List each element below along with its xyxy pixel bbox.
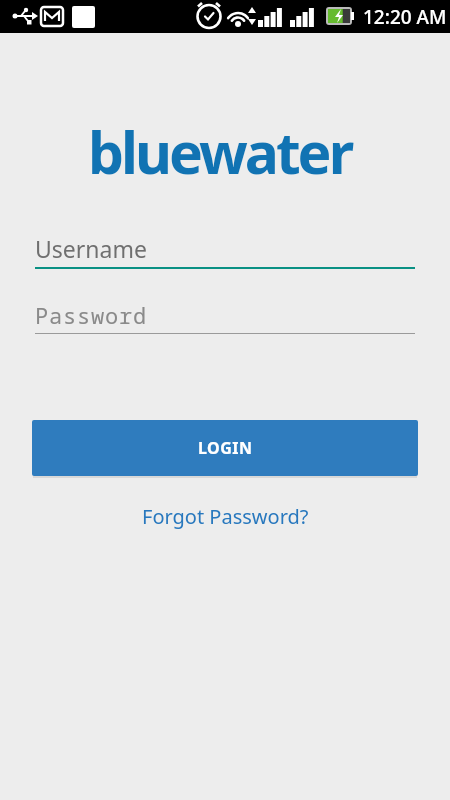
button[interactable]: Forgot Password? bbox=[142, 503, 309, 530]
staticText: Password bbox=[35, 300, 148, 330]
button[interactable]: Password bbox=[35, 300, 415, 334]
staticText: Username bbox=[35, 233, 147, 264]
staticText: 12:20 AM bbox=[363, 4, 447, 30]
button[interactable]: LOGIN bbox=[32, 420, 418, 476]
button[interactable]: Username bbox=[35, 233, 415, 269]
staticText: Forgot Password? bbox=[142, 503, 309, 530]
staticText: LOGIN bbox=[198, 437, 253, 459]
staticText: bluewater bbox=[88, 113, 352, 191]
